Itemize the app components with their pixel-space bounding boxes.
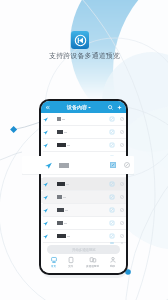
button[interactable]: Preview <box>43 152 124 164</box>
button[interactable]: Block <box>120 143 124 147</box>
staticText: 多通道预览 <box>86 264 99 267</box>
button[interactable]: Preview <box>110 195 114 199</box>
button[interactable]: Block <box>120 208 124 212</box>
staticText: 文件 <box>68 264 74 267</box>
button[interactable]: Preview <box>43 113 124 125</box>
button[interactable]: Preview <box>110 221 114 225</box>
button[interactable]: Block <box>120 221 124 225</box>
button[interactable]: 首页 <box>50 257 58 267</box>
button[interactable]: Block <box>120 117 124 121</box>
staticText: 首页 <box>51 264 57 267</box>
button[interactable]: 开始多通道预览 <box>47 245 120 254</box>
button[interactable]: Preview <box>43 178 124 190</box>
button[interactable]: Block <box>120 195 124 199</box>
button[interactable]: Block <box>124 162 130 168</box>
staticText: 支持跨设备多通道预览 <box>49 51 120 60</box>
button[interactable]: Preview <box>43 139 124 151</box>
button[interactable]: Preview <box>43 217 124 229</box>
button[interactable]: Add <box>116 104 123 111</box>
button[interactable]: Select <box>22 156 134 174</box>
button[interactable]: Preview <box>110 208 114 212</box>
staticText: 我的 <box>110 264 116 267</box>
button[interactable]: Multi channel preview <box>71 31 89 49</box>
button[interactable]: Preview <box>43 191 124 203</box>
button[interactable]: Preview <box>110 130 114 134</box>
button[interactable]: 文件 <box>67 257 75 267</box>
button[interactable]: Preview <box>110 182 114 186</box>
button[interactable]: Preview <box>43 165 124 177</box>
button[interactable]: Preview <box>110 117 114 121</box>
button[interactable]: Block <box>120 182 124 186</box>
button[interactable]: Preview <box>43 230 124 242</box>
staticText: 设备内容 <box>67 104 87 110</box>
button[interactable]: 多通道预览 <box>85 257 100 267</box>
staticText: 开始多通道预览 <box>72 248 96 252</box>
button[interactable]: Back <box>44 104 50 110</box>
button[interactable]: Block <box>120 130 124 134</box>
button[interactable]: 我的 <box>109 257 117 267</box>
button[interactable]: Preview <box>43 126 124 138</box>
button[interactable]: Select <box>110 162 116 168</box>
button[interactable]: Block <box>120 234 124 238</box>
button[interactable]: Preview <box>43 204 124 216</box>
button[interactable]: Preview <box>110 234 114 238</box>
button[interactable]: Preview <box>110 143 114 147</box>
button[interactable]: Search <box>107 104 114 111</box>
